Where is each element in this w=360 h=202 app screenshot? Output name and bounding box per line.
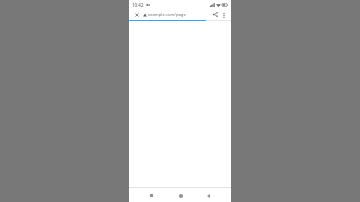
- button[interactable]: Home: [175, 190, 186, 201]
- button[interactable]: Recent apps: [146, 190, 157, 201]
- button[interactable]: Back: [203, 190, 214, 201]
- button[interactable]: More options: [220, 11, 228, 19]
- button[interactable]: Close: [132, 10, 141, 19]
- staticText: example.com/page: [148, 12, 186, 18]
- button[interactable]: example.com/page: [143, 9, 210, 20]
- staticText: 10:42: [132, 2, 144, 8]
- button[interactable]: Share: [211, 10, 220, 19]
